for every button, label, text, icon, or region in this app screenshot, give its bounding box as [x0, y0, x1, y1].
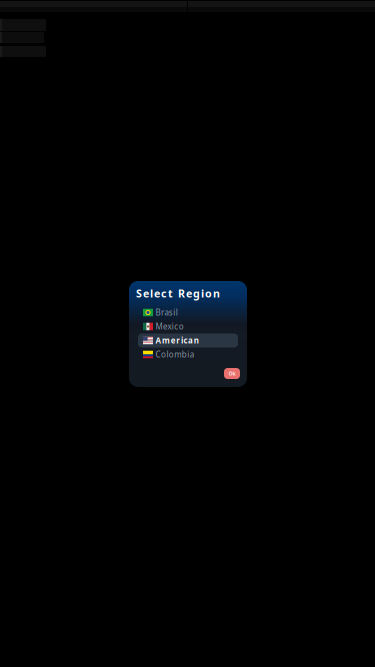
button[interactable]: Ok [224, 368, 240, 379]
staticText: American [155, 335, 199, 346]
button[interactable]: Colombia [138, 347, 238, 361]
button[interactable]: Brasil [138, 305, 238, 319]
staticText: Select Region [136, 286, 220, 300]
staticText: Ok [228, 370, 236, 377]
staticText: Colombia [155, 349, 194, 360]
button[interactable]: American [138, 333, 238, 347]
staticText: Brasil [155, 307, 178, 318]
staticText: Mexico [155, 321, 184, 332]
button[interactable]: Mexico [138, 319, 238, 333]
